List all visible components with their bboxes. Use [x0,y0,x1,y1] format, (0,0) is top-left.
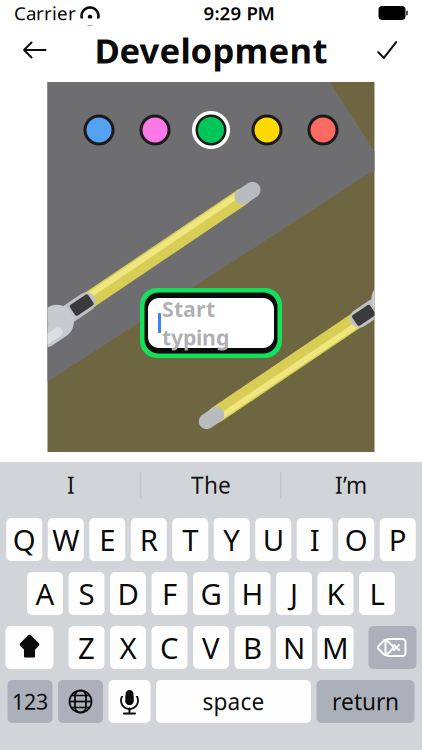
button[interactable]: J [276,572,312,615]
staticText: V [202,628,220,667]
staticText: R [140,520,158,559]
staticText: M [322,628,349,667]
staticText: I [310,520,320,559]
staticText: Z [78,628,95,667]
button[interactable]: Q [6,518,42,561]
staticText: A [35,574,54,613]
staticText: N [283,628,305,667]
button[interactable]: A [27,572,63,615]
button[interactable]: X [110,626,146,669]
staticText: Development [94,27,327,73]
staticText: Y [223,520,240,559]
staticText: The [191,470,231,500]
staticText: Carrier [14,1,76,25]
staticText: C [160,628,179,667]
staticText: H [241,574,263,613]
button[interactable]: F [151,572,187,615]
button[interactable]: U [255,518,291,561]
button[interactable]: Back [12,28,58,72]
button[interactable]: I [1,462,140,508]
button[interactable]: S [68,572,104,615]
button[interactable]: M [317,626,353,669]
button[interactable]: 123 [7,680,52,723]
button[interactable]: Colour 3 [183,106,239,154]
button[interactable]: Colour 4 [239,106,295,154]
button[interactable]: return [316,680,414,723]
staticText: I’m [335,470,367,500]
button[interactable]: H [234,572,270,615]
staticText: Q [13,520,36,559]
staticText: 123 [12,687,48,716]
button[interactable]: space [156,680,311,723]
button[interactable]: D [110,572,146,615]
button[interactable]: Colour 1 [71,106,127,154]
staticText: L [369,574,384,613]
button[interactable]: Shift [5,626,53,669]
staticText: D [117,574,138,613]
button[interactable]: Dictation [108,680,150,723]
button[interactable]: R [131,518,167,561]
button[interactable]: B [234,626,270,669]
staticText: W [52,520,79,559]
staticText: F [162,574,177,613]
button[interactable]: W [48,518,84,561]
button[interactable]: P [380,518,416,561]
staticText: S [78,574,94,613]
button[interactable]: O [338,518,374,561]
button[interactable]: Colour 2 [127,106,183,154]
staticText: Start typing [162,295,229,351]
button[interactable]: Z [68,626,104,669]
button[interactable]: C [151,626,187,669]
button[interactable]: Y [214,518,250,561]
button[interactable]: K [317,572,353,615]
staticText: B [243,628,262,667]
button[interactable]: The [141,462,280,508]
button[interactable]: I’m [281,462,420,508]
staticText: X [119,628,136,667]
staticText: space [202,686,264,716]
button[interactable]: Start typing [138,286,284,360]
staticText: E [99,520,115,559]
staticText: U [263,520,284,559]
button[interactable]: Done [364,28,410,72]
button[interactable]: I [297,518,333,561]
button[interactable]: E [89,518,125,561]
staticText: P [389,520,407,559]
staticText: K [326,574,344,613]
button[interactable]: G [193,572,229,615]
staticText: return [332,686,399,716]
button[interactable]: Next keyboard [58,680,103,723]
staticText: G [200,574,221,613]
button[interactable]: N [276,626,312,669]
button[interactable]: V [193,626,229,669]
button[interactable]: T [172,518,208,561]
button[interactable]: L [359,572,395,615]
staticText: J [290,574,298,613]
staticText: T [182,520,198,559]
staticText: 9:29 PM [203,1,274,25]
button[interactable]: Delete [368,626,416,669]
staticText: I [67,470,75,500]
button[interactable]: Colour 5 [295,106,351,154]
staticText: O [345,520,368,559]
